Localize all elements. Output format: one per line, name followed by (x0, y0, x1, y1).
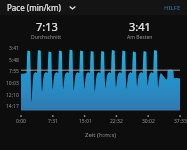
staticText: 7:13 (36, 19, 58, 34)
staticText: Durchschnitt (31, 34, 62, 41)
staticText: 7:31 (48, 118, 58, 125)
staticText: HILFE (164, 4, 181, 12)
staticText: 7:55 (9, 68, 19, 75)
staticText: 10:03 (6, 80, 19, 87)
staticText: 14:17 (6, 103, 19, 110)
staticText: 22:32 (110, 118, 123, 125)
staticText: Am Besten (127, 34, 153, 41)
staticText: 37:33 (174, 118, 187, 125)
staticText: 3:41 (9, 45, 19, 52)
staticText: 15:01 (79, 118, 92, 125)
staticText: 0:00 (16, 118, 26, 125)
staticText: 30:02 (142, 118, 155, 125)
staticText: 12:10 (6, 92, 19, 99)
staticText: 3:41 (129, 19, 151, 34)
button[interactable]: HILFE (158, 0, 187, 15)
other: Change metric (68, 3, 77, 12)
staticText: Zeit (h:m:s) (85, 131, 117, 139)
staticText: Pace (min/km) (7, 2, 61, 13)
staticText: 5:48 (9, 57, 19, 64)
button[interactable]: Pace (min/km) (0, 0, 81, 15)
